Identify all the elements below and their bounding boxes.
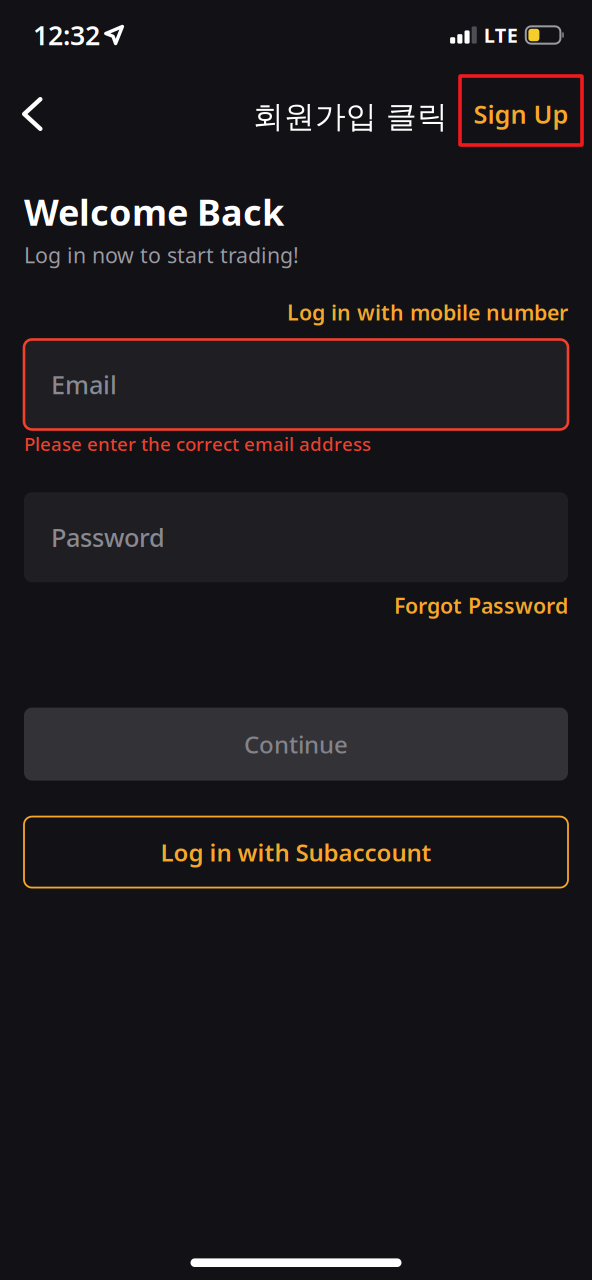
staticText: Log in now to start trading! — [24, 241, 299, 269]
staticText: Password — [51, 520, 165, 554]
button[interactable]: Log in with Subaccount — [24, 817, 568, 888]
staticText: Welcome Back — [24, 188, 284, 236]
staticText: Continue — [244, 728, 348, 760]
staticText: Forgot Password — [394, 591, 568, 620]
staticText: Email — [51, 368, 117, 401]
staticText: Log in with Subaccount — [160, 836, 431, 868]
staticText: Please enter the correct email address — [24, 431, 371, 456]
staticText: 12:32 — [33, 17, 100, 53]
button[interactable]: Log in with mobile number — [287, 298, 568, 326]
staticText: LTE — [484, 22, 518, 48]
staticText: Sign Up — [473, 97, 568, 131]
button[interactable]: Continue — [24, 708, 568, 781]
button[interactable]: Back — [0, 76, 64, 158]
staticText: 회원가입 클릭 — [253, 98, 448, 136]
staticText: Log in with mobile number — [287, 298, 568, 326]
button[interactable]: Sign Up — [460, 76, 582, 145]
button[interactable]: Forgot Password — [394, 591, 568, 620]
